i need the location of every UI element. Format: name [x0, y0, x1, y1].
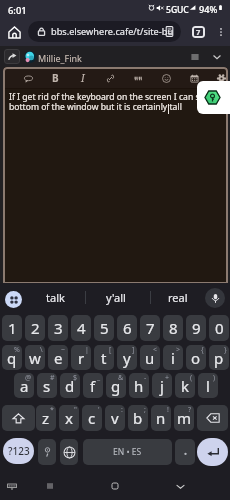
button[interactable]: Gboard menu [5, 291, 22, 308]
button[interactable]: Settings [211, 70, 228, 86]
staticText: bbs.elsewhere.cafe/t/site-bu [51, 25, 174, 38]
staticText: ; [144, 405, 146, 415]
button[interactable]: n [151, 405, 171, 431]
button[interactable]: Home [2, 20, 27, 45]
staticText: talk [46, 290, 65, 305]
button[interactable]: y'all [90, 283, 142, 312]
button[interactable]: More options [211, 20, 230, 44]
staticText: g [111, 376, 121, 396]
button[interactable]: w [25, 345, 45, 370]
button[interactable]: x [59, 405, 79, 431]
button[interactable]: 3 [48, 315, 68, 341]
staticText: 1 [8, 318, 17, 338]
staticText: - [144, 373, 147, 383]
staticText: p [214, 348, 224, 368]
staticText: n [156, 408, 166, 428]
button[interactable]: Blockquote [128, 70, 148, 86]
button[interactable]: Voice input [205, 288, 225, 308]
button[interactable]: 0 [209, 315, 229, 341]
button[interactable]: 5 [94, 315, 114, 341]
button[interactable]: Reader mode [161, 23, 178, 40]
button[interactable]: Backspace [197, 405, 228, 431]
button[interactable]: k [175, 373, 195, 398]
button[interactable]: j [152, 373, 172, 398]
button[interactable]: c [82, 405, 102, 431]
button[interactable]: EN • ES [83, 439, 172, 465]
staticText: ~ [61, 345, 66, 355]
button[interactable]: 2 [25, 315, 45, 341]
button[interactable]: e [48, 345, 68, 370]
button[interactable]: Period [175, 439, 195, 465]
button[interactable]: 7 [140, 315, 160, 341]
staticText: _ [97, 373, 101, 383]
button[interactable]: 1 [2, 315, 22, 341]
staticText: 7 [196, 27, 201, 37]
button[interactable]: Enter [197, 438, 228, 466]
button[interactable]: d [60, 373, 80, 398]
button[interactable]: Shift [2, 405, 35, 431]
button[interactable]: Back [168, 476, 192, 496]
staticText: 4 [77, 318, 86, 338]
button[interactable]: r [71, 345, 91, 370]
button[interactable]: z [36, 405, 56, 431]
button[interactable]: Hide keyboard [0, 476, 23, 496]
button[interactable]: Menu [186, 49, 203, 64]
button[interactable]: real [152, 283, 204, 312]
staticText: ! [167, 405, 169, 415]
button[interactable]: y [117, 345, 137, 370]
button[interactable]: p [209, 345, 229, 370]
staticText: w [29, 348, 41, 368]
button[interactable]: 8 [163, 315, 183, 341]
button[interactable]: h [129, 373, 149, 398]
button[interactable]: t [94, 345, 114, 370]
button[interactable]: 6 [117, 315, 137, 341]
button[interactable]: Emoji [156, 70, 176, 86]
button[interactable]: Recents [38, 476, 62, 496]
button[interactable]: 4 [71, 315, 91, 341]
staticText: 94% [199, 3, 218, 16]
button[interactable]: Expand [208, 49, 225, 64]
staticText: " [74, 405, 77, 415]
staticText: $ [73, 373, 78, 383]
button[interactable]: Change language [60, 439, 78, 465]
button[interactable]: i [163, 345, 183, 370]
staticText: real [168, 290, 188, 305]
button[interactable]: o [186, 345, 206, 370]
button[interactable]: bbs.elsewhere.cafe/t/site-bu [28, 21, 181, 42]
button[interactable]: 9 [186, 315, 206, 341]
staticText: % [14, 345, 20, 355]
button[interactable]: m [174, 405, 194, 431]
staticText: UC [177, 4, 189, 16]
staticText: b [133, 408, 143, 428]
button[interactable]: Quote bubble [18, 70, 38, 86]
button[interactable]: g [106, 373, 126, 398]
button[interactable]: Home [103, 476, 127, 496]
button[interactable]: Calendar [184, 70, 204, 86]
button[interactable]: s [37, 373, 57, 398]
staticText: r [78, 348, 85, 368]
staticText: m [177, 408, 192, 428]
button[interactable]: ?123 [3, 438, 34, 464]
staticText: 6:01 [8, 4, 27, 17]
button[interactable]: Password manager [197, 81, 230, 114]
button[interactable]: a [14, 373, 34, 398]
staticText: } [224, 345, 227, 355]
button[interactable]: Tabs [186, 20, 210, 44]
staticText: EN • ES [113, 446, 142, 458]
staticText: > [176, 345, 181, 355]
button[interactable]: Comma [38, 439, 56, 465]
button[interactable]: talk [29, 283, 81, 312]
button[interactable]: B [45, 70, 65, 86]
button[interactable]: u [140, 345, 160, 370]
button[interactable]: l [198, 373, 218, 398]
button[interactable]: Reply [4, 49, 20, 64]
button[interactable]: v [105, 405, 125, 431]
staticText: s [43, 376, 51, 396]
button[interactable]: Link [100, 70, 120, 86]
staticText: Millie_Fink [38, 52, 82, 64]
button[interactable]: I [73, 70, 93, 86]
button[interactable]: f [83, 373, 103, 398]
staticText: If I get rid of the keyboard on the scre… [9, 91, 225, 112]
button[interactable]: b [128, 405, 148, 431]
button[interactable]: q [2, 345, 22, 370]
